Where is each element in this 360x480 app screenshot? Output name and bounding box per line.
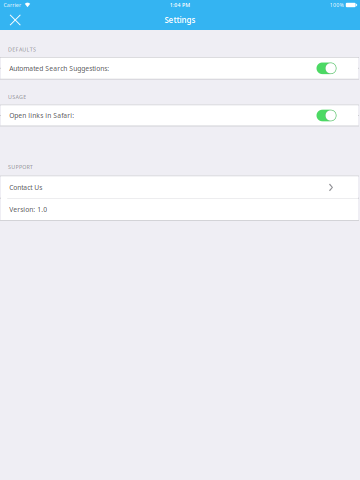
- staticText: 100%: [330, 1, 344, 9]
- staticText: Settings: [164, 15, 195, 25]
- button[interactable]: Open links in Safari:: [1, 105, 358, 126]
- button[interactable]: Automated Search Suggestions:: [1, 58, 358, 79]
- staticText: Version: 1.0: [9, 205, 47, 214]
- staticText: DEFAULTS: [8, 46, 36, 53]
- button[interactable]: Close: [3, 10, 27, 30]
- staticText: USAGE: [8, 93, 26, 101]
- staticText: Carrier: [4, 1, 21, 9]
- staticText: SUPPORT: [8, 163, 33, 171]
- staticText: Open links in Safari:: [9, 111, 74, 120]
- staticText: Contact Us: [9, 183, 42, 192]
- staticText: Automated Search Suggestions:: [9, 64, 109, 73]
- button[interactable]: Contact Us: [1, 176, 358, 198]
- staticText: 1:04 PM: [170, 1, 190, 9]
